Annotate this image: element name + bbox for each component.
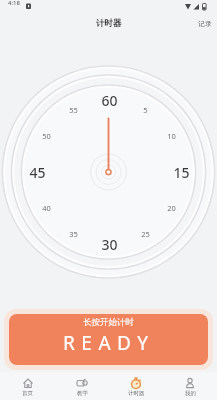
button[interactable]: 长按开始计时: [4, 309, 213, 370]
staticText: 教学: [77, 390, 88, 397]
staticText: 40: [42, 203, 51, 213]
staticText: 长按开始计时: [83, 317, 134, 328]
staticText: 计时器: [128, 390, 145, 397]
staticText: 35: [69, 229, 78, 239]
staticText: 45: [29, 163, 46, 182]
staticText: 55: [69, 105, 78, 115]
button[interactable]: 教学: [55, 372, 109, 400]
button[interactable]: 计时器: [109, 372, 163, 400]
button[interactable]: 记录: [198, 19, 212, 28]
staticText: 记录: [198, 19, 212, 28]
staticText: 20: [167, 203, 176, 213]
button[interactable]: 我的: [163, 372, 217, 400]
staticText: 60: [101, 91, 118, 110]
staticText: 4:18: [8, 0, 20, 7]
staticText: 5: [143, 105, 148, 115]
staticText: 15: [173, 163, 190, 182]
button[interactable]: 首页: [0, 372, 55, 400]
staticText: 10: [167, 131, 176, 141]
staticText: 30: [101, 235, 118, 254]
staticText: 25: [141, 229, 150, 239]
staticText: 首页: [22, 390, 33, 397]
staticText: READY: [63, 330, 155, 356]
staticText: 计时器: [96, 18, 122, 29]
staticText: 50: [42, 131, 51, 141]
staticText: 我的: [185, 390, 196, 397]
